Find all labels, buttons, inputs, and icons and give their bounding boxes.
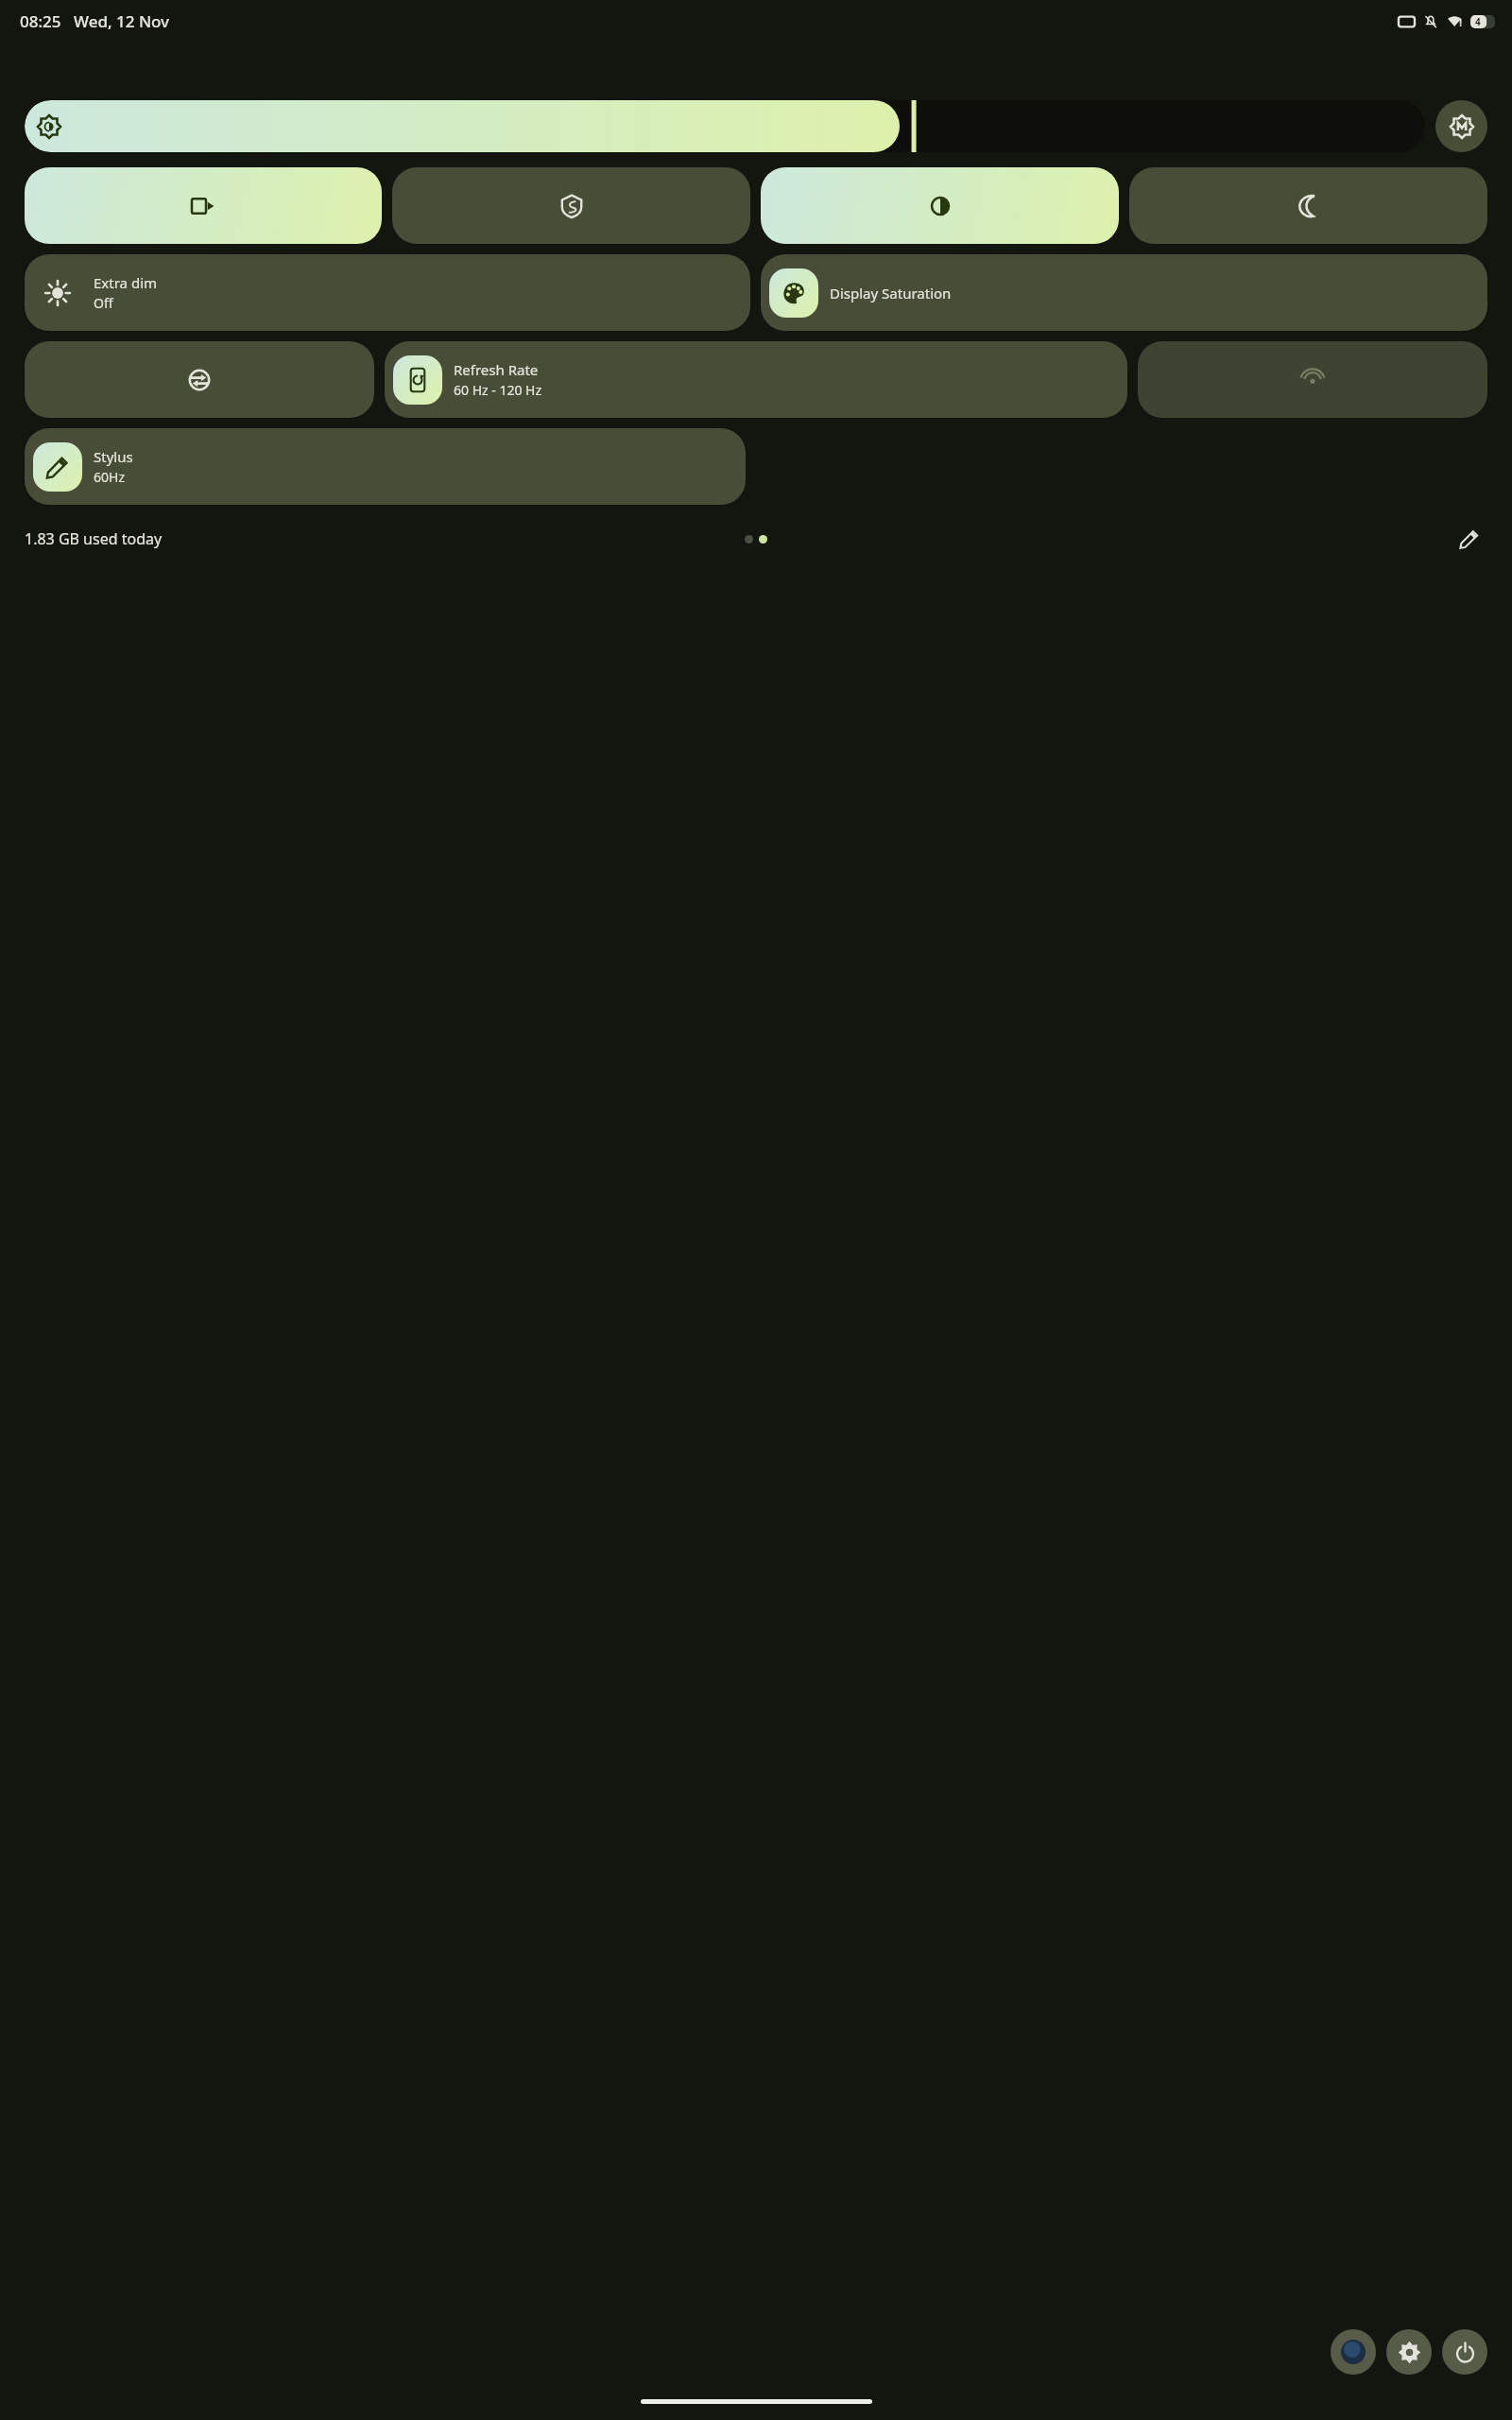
button[interactable]: User account bbox=[1331, 2329, 1376, 2375]
button[interactable]: Auto brightness bbox=[1435, 100, 1487, 152]
staticText: 60Hz bbox=[94, 468, 125, 486]
button[interactable]: Power bbox=[1442, 2329, 1487, 2375]
button[interactable]: Safety bbox=[392, 167, 750, 244]
button[interactable]: Settings bbox=[1386, 2329, 1432, 2375]
button[interactable]: Screen record bbox=[25, 167, 382, 244]
button[interactable]: Edit tiles bbox=[1452, 521, 1487, 557]
staticText: Refresh Rate bbox=[454, 360, 539, 379]
staticText: Off bbox=[94, 294, 113, 312]
staticText: 60 Hz - 120 Hz bbox=[454, 381, 542, 399]
staticText: 08:25 bbox=[20, 10, 61, 32]
button[interactable]: Refresh Rate bbox=[385, 341, 1127, 418]
button[interactable]: Stylus bbox=[25, 428, 746, 505]
staticText: Stylus bbox=[94, 447, 133, 466]
button[interactable]: Do not disturb bbox=[1129, 167, 1487, 244]
button[interactable]: Cast bbox=[1138, 341, 1487, 418]
button[interactable]: Contrast bbox=[761, 167, 1119, 244]
button[interactable]: Display Saturation bbox=[761, 254, 1487, 331]
button[interactable]: Brightness bbox=[25, 100, 1425, 152]
button[interactable]: 1.83 GB used today bbox=[25, 528, 163, 549]
staticText: 4 bbox=[1475, 15, 1481, 28]
staticText: Display Saturation bbox=[830, 284, 952, 302]
button[interactable]: Extra dim bbox=[25, 254, 750, 331]
staticText: Wed, 12 Nov bbox=[74, 10, 170, 32]
button[interactable]: Auto rotate bbox=[25, 341, 374, 418]
staticText: Extra dim bbox=[94, 273, 158, 292]
